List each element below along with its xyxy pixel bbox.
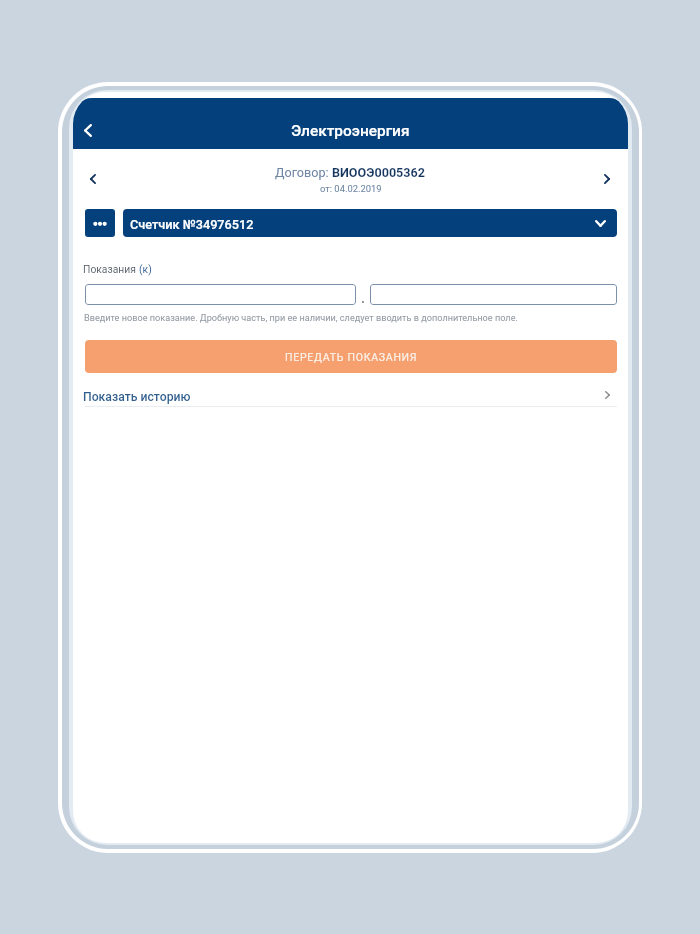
staticText: ВИООЭ0005362: [332, 165, 426, 180]
button[interactable]: Предыдущий договор: [75, 161, 111, 197]
button[interactable]: Счетчик №34976512: [123, 209, 617, 237]
button[interactable]: [370, 284, 617, 305]
button[interactable]: Показать историю: [73, 380, 628, 407]
button[interactable]: Назад: [73, 112, 105, 149]
staticText: от: 04.02.2019: [320, 183, 382, 194]
staticText: (к): [139, 263, 152, 275]
button[interactable]: Дополнительные действия: [85, 209, 115, 237]
button[interactable]: Следующий договор: [589, 161, 625, 197]
staticText: Договор:: [275, 165, 332, 180]
staticText: Счетчик №34976512: [130, 217, 595, 232]
staticText: Электроэнергия: [291, 122, 410, 140]
staticText: Введите новое показание. Дробную часть, …: [84, 313, 518, 324]
staticText: Показания: [83, 263, 139, 275]
button[interactable]: [85, 284, 356, 305]
staticText: ПЕРЕДАТЬ ПОКАЗАНИЯ: [285, 351, 418, 363]
button[interactable]: ПЕРЕДАТЬ ПОКАЗАНИЯ: [85, 340, 617, 373]
staticText: Показать историю: [83, 390, 191, 404]
